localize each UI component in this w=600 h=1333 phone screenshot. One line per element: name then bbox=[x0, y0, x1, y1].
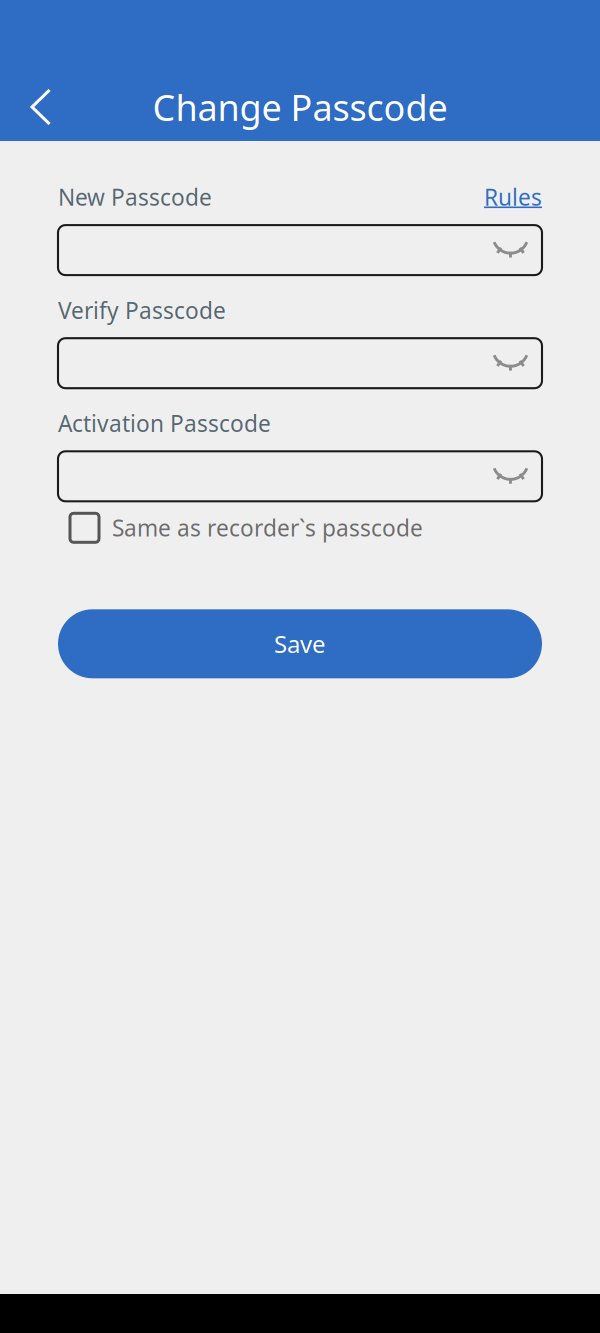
button[interactable]: Show Activation Passcode bbox=[485, 453, 542, 499]
staticText: Verify Passcode bbox=[58, 295, 226, 325]
button[interactable]: Same as recorder`s passcode bbox=[70, 513, 542, 542]
staticText: Change Passcode bbox=[152, 83, 447, 131]
button[interactable]: Back bbox=[0, 74, 69, 140]
staticText: Save bbox=[274, 628, 326, 660]
staticText: Activation Passcode bbox=[58, 408, 271, 438]
staticText: Same as recorder`s passcode bbox=[112, 513, 423, 543]
staticText: New Passcode bbox=[58, 182, 212, 212]
button[interactable]: Show New Passcode bbox=[485, 227, 542, 273]
staticText: Rules bbox=[484, 182, 542, 212]
button[interactable]: Show Verify Passcode bbox=[485, 340, 542, 386]
button[interactable]: Save bbox=[58, 609, 542, 678]
button[interactable]: Rules bbox=[484, 182, 542, 212]
